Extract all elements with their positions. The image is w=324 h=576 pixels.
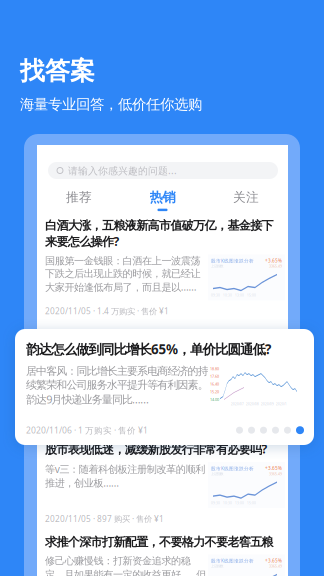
staticText: 2020/11/05 · 1.4 万购实 · 售价 ¥1 [45, 305, 169, 317]
staticText: 18.80 [210, 366, 219, 371]
staticText: 韵达怎么做到同比增长65%，单价比圆通低? [26, 340, 271, 358]
staticText: 股市K线图涨跌分析 [211, 558, 254, 564]
button[interactable]: 白酒大涨，五粮液新高市值破万亿，基金接下来要怎么操作? [37, 218, 288, 317]
button[interactable]: 请输入你感兴趣的问题... [48, 162, 278, 179]
staticText: 15.20 [210, 389, 219, 394]
button[interactable]: 关注 [204, 189, 288, 211]
staticText: 上证指数 [211, 472, 223, 476]
staticText: 推荐 [66, 189, 92, 205]
staticText: 2020/11/06 · 1 万购实 · 售价 ¥1 [26, 424, 148, 436]
staticText: 3365.49 [269, 564, 282, 568]
staticText: 14.00 [210, 397, 219, 402]
staticText: +3.65% [265, 557, 282, 564]
staticText: 16.40 [210, 381, 219, 387]
staticText: 17.60 [210, 374, 219, 379]
staticText: +3.65% [265, 257, 282, 264]
staticText: 关注 [233, 189, 259, 205]
staticText: 股市K线图涨跌分析 [211, 465, 254, 472]
staticText: 海量专业回答，低价任你选购 [20, 95, 202, 113]
staticText: 居中客风：同比增长主要系电商经济的持续繁荣和公司服务水平提升等有利因素。韵达9月… [26, 364, 209, 407]
staticText: 3365.49 [269, 264, 282, 268]
staticText: 修己心赚慢钱：打新资金追求的稳定，且如果能有一定的收益更好……但是最核心的是尽可… [45, 554, 206, 576]
button[interactable]: 热销 [121, 189, 204, 211]
button[interactable]: 股市表现低迷，减缓新股发行非常有必要吗? [37, 441, 288, 524]
button[interactable]: 推荐 [37, 189, 121, 211]
staticText: 国服第一金钱眼：白酒在上一波震荡下跌之后出现止跌的时候，就已经让大家开始逢低布局… [45, 254, 200, 294]
staticText: 09:30 10:30 13:00 15:00 [211, 293, 256, 297]
staticText: 2020/11/05 · 897 购买 · 售价 ¥1 [45, 513, 164, 524]
staticText: 股市表现低迷，减缓新股发行非常有必要吗? [45, 441, 268, 457]
staticText: 热销 [149, 189, 175, 206]
staticText: +3.65% [265, 465, 282, 471]
staticText: 上证指数 [211, 264, 223, 268]
staticText: 白酒大涨，五粮液新高市值破万亿，基金接下来要怎么操作? [45, 218, 274, 249]
staticText: 找答案 [20, 55, 95, 87]
staticText: 2020/07 2020/08 2020/09 2020/1 [231, 402, 287, 406]
staticText: 请输入你感兴趣的问题... [68, 164, 177, 177]
button[interactable]: 求推个深市打新配置，不要格力不要老窖五粮 [37, 534, 288, 576]
staticText: 09:30 10:30 13:00 15:00 [211, 501, 256, 505]
button[interactable]: 韵达怎么做到同比增长65%，单价比圆通低? [15, 329, 314, 445]
staticText: 等v三：随着科创板注册制改革的顺利推进，创业板…… [45, 462, 205, 490]
staticText: 股市K线图涨跌分析 [211, 258, 254, 264]
staticText: 求推个深市打新配置，不要格力不要老窖五粮 [45, 534, 274, 549]
staticText: 上证指数 [211, 564, 223, 568]
staticText: 3365.49 [269, 471, 282, 476]
